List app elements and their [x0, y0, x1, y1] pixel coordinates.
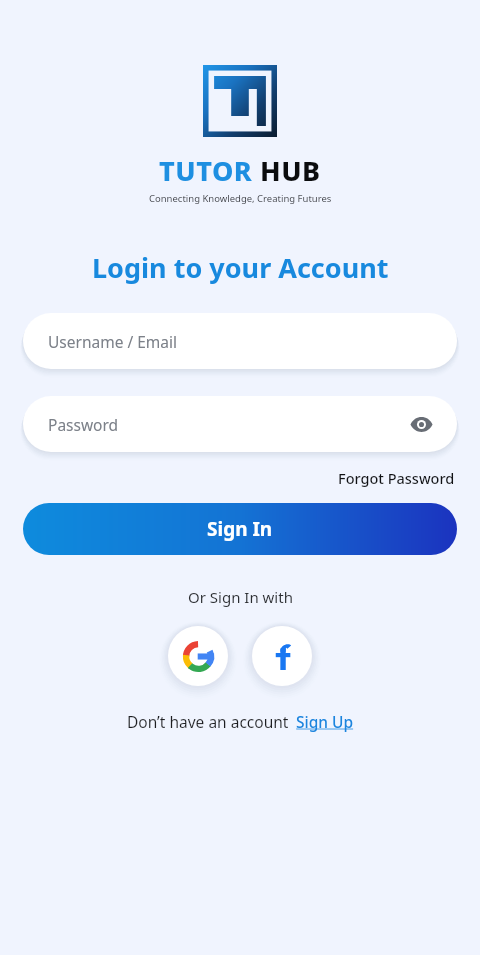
- staticText: HUB: [260, 152, 321, 189]
- staticText: Sign In: [207, 516, 273, 542]
- button[interactable]: Username / Email: [23, 313, 457, 369]
- staticText: Or Sign In with: [188, 587, 293, 607]
- button[interactable]: Show password: [405, 408, 437, 440]
- button[interactable]: Sign in with Google: [168, 626, 228, 686]
- staticText: TUTOR: [159, 152, 253, 189]
- staticText: Password: [48, 414, 119, 435]
- staticText: Forgot Password: [338, 468, 455, 488]
- button[interactable]: Password: [23, 396, 457, 452]
- staticText: Login to your Account: [92, 249, 389, 286]
- staticText: Sign Up: [296, 711, 354, 732]
- button[interactable]: Sign Up: [296, 711, 354, 732]
- staticText: Connecting Knowledge, Creating Futures: [149, 192, 332, 205]
- button[interactable]: Sign in with Facebook: [252, 626, 312, 686]
- button[interactable]: Sign In: [23, 503, 457, 555]
- staticText: Username / Email: [48, 331, 178, 352]
- staticText: Don’t have an account: [127, 711, 289, 732]
- button[interactable]: Forgot Password: [336, 466, 457, 490]
